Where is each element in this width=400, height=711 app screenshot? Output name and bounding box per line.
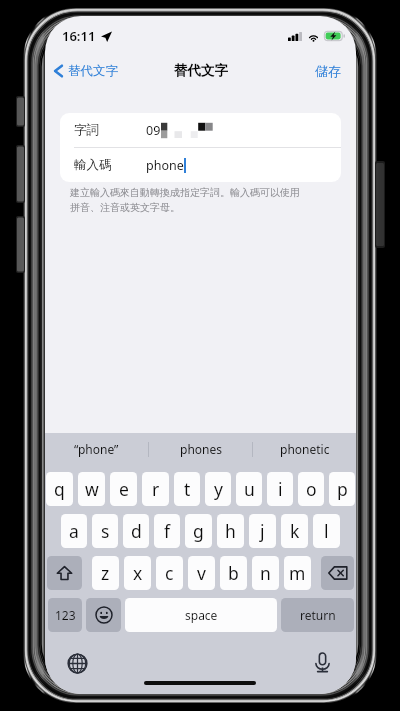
staticText: x <box>133 561 143 585</box>
staticText: g <box>193 519 204 543</box>
staticText: o <box>306 477 317 501</box>
button[interactable]: y <box>205 472 231 506</box>
button[interactable]: x <box>124 556 151 590</box>
staticText: 16:11 <box>62 27 96 45</box>
staticText: y <box>214 477 223 501</box>
staticText: b <box>228 561 239 585</box>
button[interactable]: space <box>125 598 277 632</box>
staticText: space <box>185 607 218 623</box>
staticText: u <box>244 477 255 501</box>
button[interactable]: o <box>298 472 324 506</box>
staticText: phones <box>180 441 222 457</box>
staticText: t <box>184 477 191 501</box>
button[interactable]: Dictation <box>308 648 336 676</box>
staticText: i <box>278 477 283 501</box>
staticText: h <box>225 519 236 543</box>
button[interactable]: 儲存 <box>301 58 356 84</box>
staticText: 儲存 <box>315 63 341 79</box>
button[interactable]: Emoji <box>86 598 121 632</box>
staticText: p <box>337 477 348 501</box>
button[interactable]: phones <box>149 433 252 465</box>
button[interactable]: e <box>110 472 137 506</box>
button[interactable]: 字詞 <box>60 113 341 147</box>
staticText: 09 <box>146 122 161 139</box>
button[interactable]: p <box>329 472 355 506</box>
staticText: q <box>54 477 65 501</box>
staticText: 拼音、注音或英文字母。 <box>70 201 180 214</box>
staticText: s <box>101 519 110 543</box>
button[interactable]: f <box>154 514 180 548</box>
staticText: r <box>152 477 160 501</box>
button[interactable]: v <box>188 556 215 590</box>
staticText: a <box>69 519 79 543</box>
button[interactable]: Change keyboard <box>63 649 91 677</box>
button[interactable]: 輸入碼 <box>60 148 341 182</box>
staticText: f <box>164 519 171 543</box>
button[interactable]: 123 <box>48 598 82 632</box>
button[interactable]: i <box>267 472 293 506</box>
staticText: e <box>119 477 129 501</box>
button[interactable]: return <box>281 598 354 632</box>
button[interactable]: Shift <box>47 556 82 590</box>
button[interactable]: 替代文字 <box>45 58 126 84</box>
staticText: phone <box>146 157 184 174</box>
staticText: z <box>101 561 110 585</box>
button[interactable]: a <box>61 514 87 548</box>
staticText: phonetic <box>280 441 330 457</box>
button[interactable]: m <box>284 556 311 590</box>
button[interactable]: w <box>78 472 105 506</box>
staticText: k <box>290 519 300 543</box>
button[interactable]: c <box>156 556 183 590</box>
button[interactable]: n <box>252 556 279 590</box>
button[interactable]: Backspace <box>321 556 354 590</box>
button[interactable]: d <box>123 514 149 548</box>
button[interactable]: q <box>46 472 73 506</box>
staticText: 輸入碼 <box>74 157 112 173</box>
button[interactable]: “phone” <box>45 433 148 465</box>
staticText: w <box>85 477 99 501</box>
staticText: 123 <box>55 607 76 623</box>
staticText: m <box>289 561 306 585</box>
button[interactable]: k <box>281 514 308 548</box>
button[interactable]: u <box>236 472 262 506</box>
button[interactable]: l <box>313 514 340 548</box>
button[interactable]: h <box>217 514 244 548</box>
staticText: return <box>300 607 336 623</box>
button[interactable]: s <box>92 514 118 548</box>
staticText: j <box>260 519 265 543</box>
button[interactable]: z <box>92 556 119 590</box>
staticText: “phone” <box>74 441 119 457</box>
button[interactable]: b <box>220 556 247 590</box>
staticText: d <box>131 519 142 543</box>
staticText: l <box>324 519 329 543</box>
staticText: c <box>165 561 174 585</box>
staticText: 字詞 <box>74 122 99 138</box>
staticText: 替代文字 <box>174 62 228 79</box>
staticText: v <box>197 561 206 585</box>
staticText: n <box>260 561 271 585</box>
button[interactable]: phonetic <box>253 433 356 465</box>
button[interactable]: r <box>142 472 169 506</box>
button[interactable]: g <box>185 514 212 548</box>
staticText: 建立輸入碼來自動轉換成指定字詞。輸入碼可以使用 <box>70 186 300 199</box>
button[interactable]: t <box>174 472 200 506</box>
staticText: 替代文字 <box>68 63 118 79</box>
button[interactable]: j <box>249 514 276 548</box>
